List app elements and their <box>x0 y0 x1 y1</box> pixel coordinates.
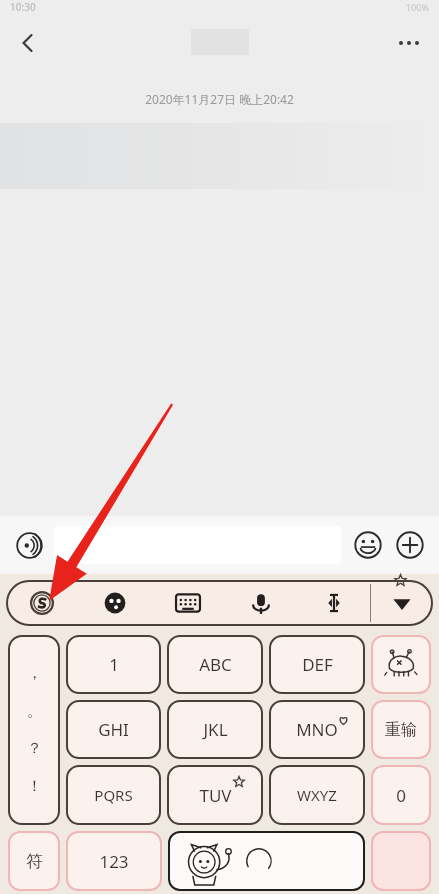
button[interactable]: DEF <box>269 635 365 694</box>
button[interactable]: Sogou input method <box>6 580 78 626</box>
button[interactable]: Space <box>168 831 365 891</box>
button[interactable]: GHI <box>66 700 161 759</box>
button[interactable]: ， <box>8 635 60 825</box>
button[interactable]: WXYZ <box>269 765 365 825</box>
button[interactable]: 123 <box>66 831 162 891</box>
button[interactable]: More <box>389 524 431 566</box>
staticText: TUV <box>199 784 232 807</box>
staticText: 123 <box>99 850 129 873</box>
button[interactable]: More options <box>387 21 431 65</box>
button[interactable]: 符 <box>8 831 60 891</box>
button[interactable]: Enter <box>371 831 431 891</box>
button[interactable]: Emoticon <box>78 580 151 626</box>
button[interactable]: ABC <box>167 635 263 694</box>
button[interactable] <box>54 526 341 564</box>
staticText: ， <box>27 664 42 683</box>
staticText: 重输 <box>385 720 417 740</box>
staticText: 10:30 <box>10 0 36 14</box>
staticText: 0 <box>396 784 406 807</box>
button[interactable]: Voice input <box>8 524 50 566</box>
staticText: PQRS <box>94 785 133 805</box>
staticText: JKL <box>203 718 228 741</box>
button[interactable]: Back <box>6 21 50 65</box>
staticText: 1 <box>109 653 119 676</box>
staticText: 。 <box>27 702 42 721</box>
staticText: 符 <box>26 851 43 872</box>
button[interactable]: JKL <box>167 700 263 759</box>
staticText: DEF <box>302 653 333 676</box>
staticText: WXYZ <box>297 785 337 805</box>
staticText: 2020年11月27日 晚上20:42 <box>0 91 439 107</box>
button[interactable]: Keyboard layout <box>151 580 224 626</box>
button[interactable]: PQRS <box>66 765 161 825</box>
button[interactable]: MNO <box>269 700 365 759</box>
staticText: ！ <box>27 777 42 796</box>
button[interactable]: Hide keyboard <box>371 580 433 626</box>
button[interactable]: Delete <box>371 635 431 694</box>
button[interactable]: Move cursor <box>297 580 370 626</box>
button[interactable]: Voice <box>224 580 297 626</box>
button[interactable]: 0 <box>371 765 431 825</box>
button[interactable]: 1 <box>66 635 161 694</box>
button[interactable]: 重输 <box>371 700 431 759</box>
button[interactable]: Emoji <box>347 524 389 566</box>
staticText: MNO <box>296 718 338 741</box>
button[interactable]: TUV <box>167 765 263 825</box>
staticText: 100% <box>406 1 429 13</box>
staticText: GHI <box>98 718 129 741</box>
staticText: ？ <box>27 739 42 758</box>
staticText: ABC <box>199 653 232 676</box>
